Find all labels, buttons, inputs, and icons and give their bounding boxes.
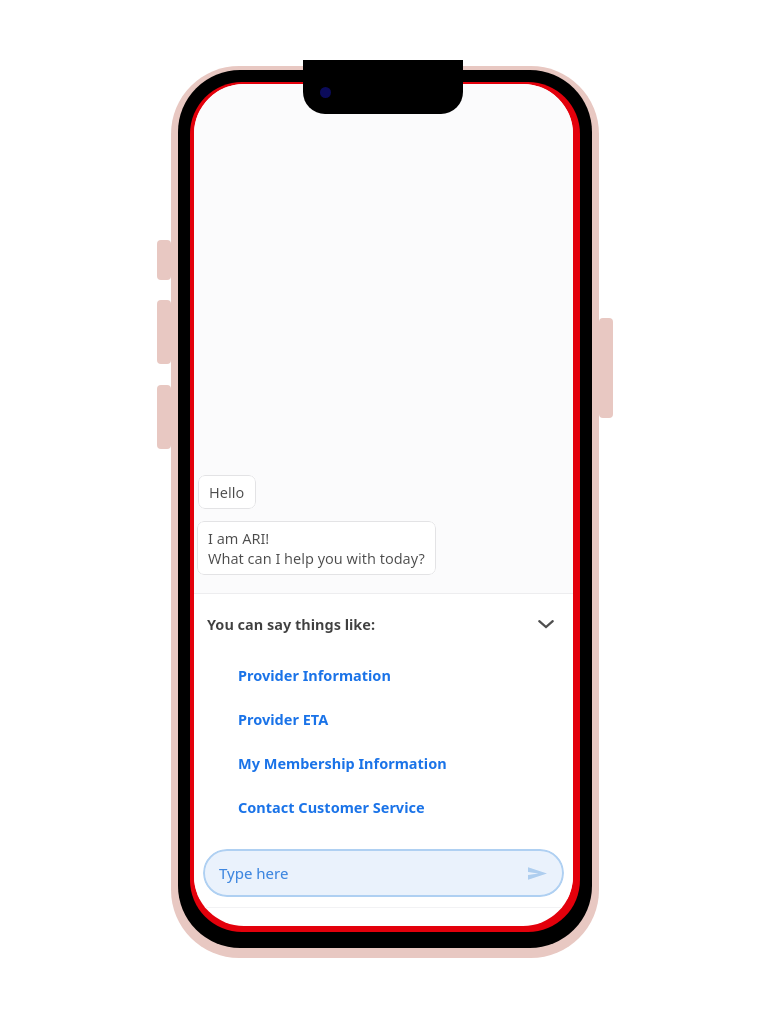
other: Collapse suggestions [533,611,559,637]
staticText: Hello [209,482,245,502]
staticText: What can I help you with today? [208,548,425,568]
button[interactable]: You can say things like: [207,607,559,641]
staticText: You can say things like: [207,614,376,634]
staticText: Type here [219,863,289,883]
staticText: Provider Information [238,665,391,685]
button[interactable]: My Membership Information [207,745,559,789]
button[interactable]: Send [524,860,550,886]
button[interactable]: Provider ETA [207,701,559,745]
button[interactable]: Contact Customer Service [207,789,559,833]
button[interactable]: Provider Information [207,657,559,701]
staticText: Contact Customer Service [238,797,425,817]
staticText: Provider ETA [238,709,329,729]
button[interactable]: Hello [198,475,256,509]
staticText: My Membership Information [238,753,447,773]
button[interactable]: Type here [203,849,564,897]
button[interactable]: I am ARI! [197,521,436,575]
staticText: I am ARI! [208,528,270,548]
